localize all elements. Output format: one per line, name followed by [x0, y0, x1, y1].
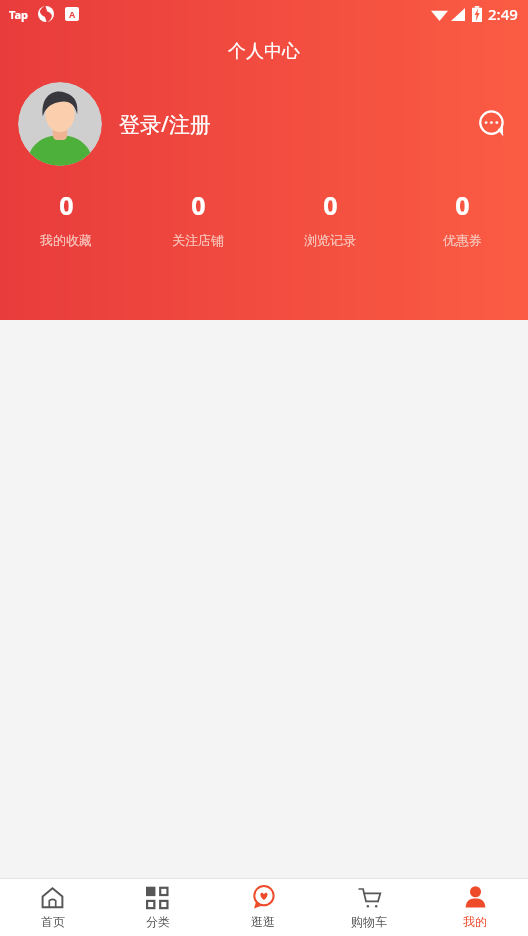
staticText: 关注店铺: [172, 232, 224, 248]
staticText: 我的收藏: [40, 232, 92, 248]
staticText: 优惠券: [443, 232, 482, 248]
button[interactable]: 0: [132, 182, 264, 254]
button[interactable]: 0: [0, 182, 132, 254]
staticText: 首页: [41, 914, 65, 929]
staticText: 浏览记录: [304, 232, 356, 248]
staticText: 分类: [146, 914, 170, 929]
staticText: 0: [59, 188, 74, 222]
staticText: 2:49: [488, 4, 518, 24]
staticText: 购物车: [351, 914, 387, 929]
staticText: 0: [191, 188, 206, 222]
staticText: Tap: [9, 7, 29, 22]
staticText: 0: [455, 188, 470, 222]
button[interactable]: 登录/注册: [119, 110, 211, 139]
staticText: 0: [323, 188, 338, 222]
button[interactable]: 首页: [0, 879, 105, 936]
button[interactable]: 逛逛: [210, 879, 316, 936]
staticText: 逛逛: [251, 914, 275, 929]
button[interactable]: 购物车: [316, 879, 422, 936]
staticText: 我的: [463, 914, 487, 929]
button[interactable]: Avatar: [18, 82, 102, 166]
staticText: A: [69, 8, 76, 20]
staticText: 个人中心: [228, 40, 300, 63]
button[interactable]: 0: [264, 182, 396, 254]
button[interactable]: 分类: [105, 879, 210, 936]
button[interactable]: Messages: [472, 104, 512, 144]
button[interactable]: 0: [396, 182, 528, 254]
button[interactable]: 我的: [422, 879, 528, 936]
